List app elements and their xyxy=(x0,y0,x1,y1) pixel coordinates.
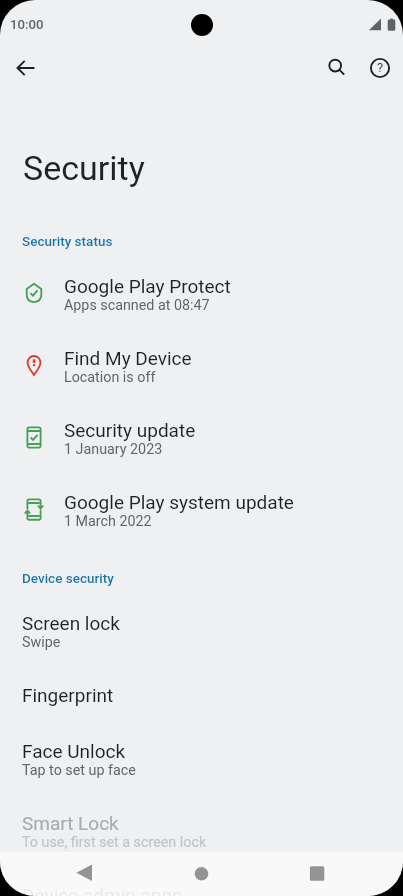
button[interactable]: Google Play Protect xyxy=(0,258,403,330)
button[interactable]: Navigate up xyxy=(8,50,44,86)
staticText: Google Play system update xyxy=(64,491,294,513)
staticText: Find My Device xyxy=(64,347,192,369)
staticText: Google Play Protect xyxy=(64,275,231,297)
staticText: 1 March 2022 xyxy=(64,513,152,530)
button[interactable]: Face Unlock xyxy=(0,723,403,795)
button[interactable]: Device admin apps xyxy=(0,867,403,896)
button[interactable]: Screen lock xyxy=(0,595,403,667)
staticText: Device admin apps xyxy=(22,884,182,896)
button[interactable]: Find My Device xyxy=(0,330,403,402)
button[interactable]: Smart Lock xyxy=(0,795,403,867)
staticText: ? xyxy=(377,60,384,75)
button[interactable]: Search xyxy=(317,48,357,88)
button[interactable]: Home xyxy=(178,852,226,896)
staticText: Fingerprint xyxy=(22,684,114,706)
staticText: Swipe xyxy=(22,634,61,651)
staticText: Face Unlock xyxy=(22,740,126,762)
button[interactable]: Fingerprint xyxy=(0,667,403,723)
staticText: Smart Lock xyxy=(22,812,119,834)
staticText: Tap to set up face xyxy=(22,762,136,779)
button[interactable]: Security update xyxy=(0,402,403,474)
staticText: To use, first set a screen lock xyxy=(22,834,207,851)
button[interactable]: Help xyxy=(360,48,400,88)
button[interactable]: Google Play system update xyxy=(0,474,403,546)
staticText: Security xyxy=(23,148,145,188)
staticText: Device security xyxy=(22,570,114,586)
staticText: 1 January 2023 xyxy=(64,441,163,458)
staticText: Security status xyxy=(22,233,113,249)
staticText: Security update xyxy=(64,419,196,441)
button[interactable]: Recent apps xyxy=(293,852,341,896)
button[interactable]: Back xyxy=(60,852,108,896)
staticText: Screen lock xyxy=(22,612,120,634)
staticText: 10:00 xyxy=(10,17,44,32)
staticText: Apps scanned at 08:47 xyxy=(64,297,210,314)
staticText: Location is off xyxy=(64,369,156,386)
